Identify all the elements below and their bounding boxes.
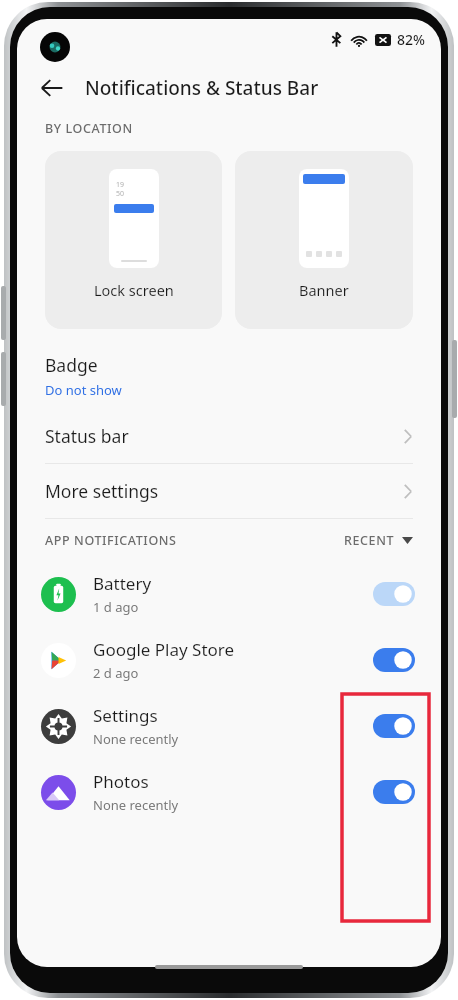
button[interactable]: 19 50 [45,151,222,329]
staticText: None recently [93,796,179,814]
button[interactable]: More settings [17,464,441,518]
staticText: 19 50 [116,180,125,198]
button[interactable]: Badge [17,343,441,409]
button[interactable]: Toggle Settings notifications [371,709,417,743]
staticText: 1 d ago [93,598,139,616]
staticText: Status bar [45,424,403,448]
staticText: BY LOCATION [45,120,133,137]
staticText: Google Play Store [93,638,235,661]
button[interactable]: Status bar [17,409,441,463]
staticText: More settings [45,479,403,503]
button[interactable]: Photos [17,759,441,825]
button[interactable]: Back [31,67,73,109]
button[interactable]: Settings [17,693,441,759]
button[interactable]: RECENT [344,532,413,549]
staticText: 2 d ago [93,664,139,682]
staticText: Badge [45,353,98,377]
staticText: Lock screen [94,280,174,300]
button[interactable]: Battery [17,561,441,627]
staticText: Do not show [45,381,122,399]
button[interactable]: Toggle Google Play Store notifications [371,643,417,677]
button[interactable]: Toggle Photos notifications [371,775,417,809]
staticText: None recently [93,730,179,748]
staticText: RECENT [344,532,395,549]
staticText: Settings [93,704,158,727]
button[interactable]: Banner [235,151,413,329]
staticText: APP NOTIFICATIONS [45,532,344,549]
staticText: Notifications & Status Bar [85,75,319,101]
staticText: Battery [93,572,152,595]
staticText: 82% [397,30,425,49]
button[interactable]: Toggle Battery notifications [371,577,417,611]
staticText: Banner [299,280,349,300]
staticText: Photos [93,770,149,793]
button[interactable]: Google Play Store [17,627,441,693]
